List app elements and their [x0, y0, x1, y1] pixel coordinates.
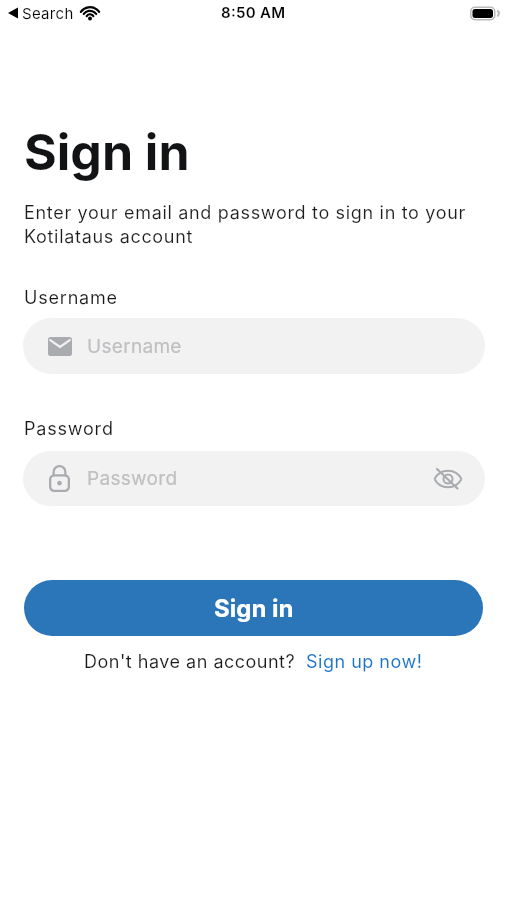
staticText: Sign up now! — [306, 651, 423, 673]
button[interactable]: Password — [23, 451, 485, 506]
button[interactable]: Sign up now! — [306, 651, 423, 673]
button[interactable]: Sign in — [24, 580, 483, 636]
staticText: Enter your email and password to sign in… — [24, 202, 466, 248]
staticText: Don't have an account? — [84, 651, 296, 673]
staticText: Username — [24, 287, 118, 309]
button[interactable] — [433, 466, 463, 492]
staticText: Username — [87, 335, 182, 358]
button[interactable]: Username — [23, 318, 485, 374]
staticText: Search — [22, 4, 74, 22]
staticText: Password — [24, 418, 114, 440]
staticText: Sign in — [214, 594, 294, 623]
staticText: Password — [87, 467, 178, 490]
staticText: 8:50 AM — [221, 3, 286, 21]
staticText: Sign in — [24, 122, 190, 182]
